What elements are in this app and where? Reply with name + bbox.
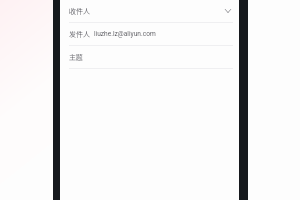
- button[interactable]: 发件人: [60, 23, 239, 46]
- staticText: liuzhe.lz@aliyun.com: [94, 30, 156, 38]
- button[interactable]: 主题: [60, 46, 239, 69]
- button[interactable]: 收件人: [60, 0, 239, 23]
- button[interactable]: Expand recipients: [222, 5, 234, 17]
- staticText: 主题: [69, 52, 83, 62]
- staticText: 发件人: [69, 29, 90, 39]
- staticText: 收件人: [69, 6, 90, 16]
